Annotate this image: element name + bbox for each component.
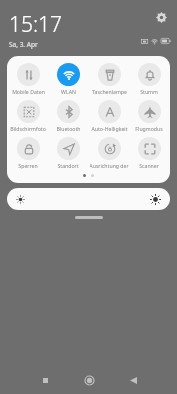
staticText: Auto-Helligkeit xyxy=(91,125,128,132)
button[interactable]: Home xyxy=(76,367,102,393)
staticText: Bildschirmfoto xyxy=(10,125,46,132)
button[interactable]: Drag handle xyxy=(75,216,103,219)
staticText: Scanner xyxy=(139,162,159,169)
staticText: 15:17 xyxy=(9,10,63,39)
button[interactable]: Standort xyxy=(48,136,88,170)
button[interactable]: Settings xyxy=(153,9,169,25)
button[interactable]: Brightness xyxy=(7,188,170,210)
staticText: Flugmodus xyxy=(135,125,163,132)
button[interactable]: WLAN xyxy=(48,62,88,96)
staticText: Bluetooth xyxy=(56,125,81,132)
button[interactable]: Stumm xyxy=(129,62,169,96)
staticText: Sa, 3. Apr xyxy=(9,40,38,49)
staticText: Mobile Daten xyxy=(12,88,45,95)
staticText: Stumm xyxy=(140,88,158,95)
staticText: Ausrichtung der Sperre xyxy=(89,162,129,169)
button[interactable]: Mobile Daten xyxy=(8,62,48,96)
button[interactable]: Recent apps xyxy=(32,367,58,393)
staticText: WLAN xyxy=(61,88,76,95)
button[interactable]: Auto-Helligkeit xyxy=(89,99,129,133)
staticText: Sperren xyxy=(18,162,38,169)
button[interactable]: Bluetooth xyxy=(48,99,88,133)
staticText: Taschenlampe xyxy=(92,88,127,95)
button[interactable]: Back xyxy=(120,367,146,393)
button[interactable]: Scanner xyxy=(129,136,169,170)
button[interactable]: Ausrichtung der Sperre xyxy=(89,136,129,170)
button[interactable]: Taschenlampe xyxy=(89,62,129,96)
button[interactable]: Flugmodus xyxy=(129,99,169,133)
button[interactable]: Bildschirmfoto xyxy=(8,99,48,133)
button[interactable]: Sperren xyxy=(8,136,48,170)
staticText: Standort xyxy=(57,162,79,169)
